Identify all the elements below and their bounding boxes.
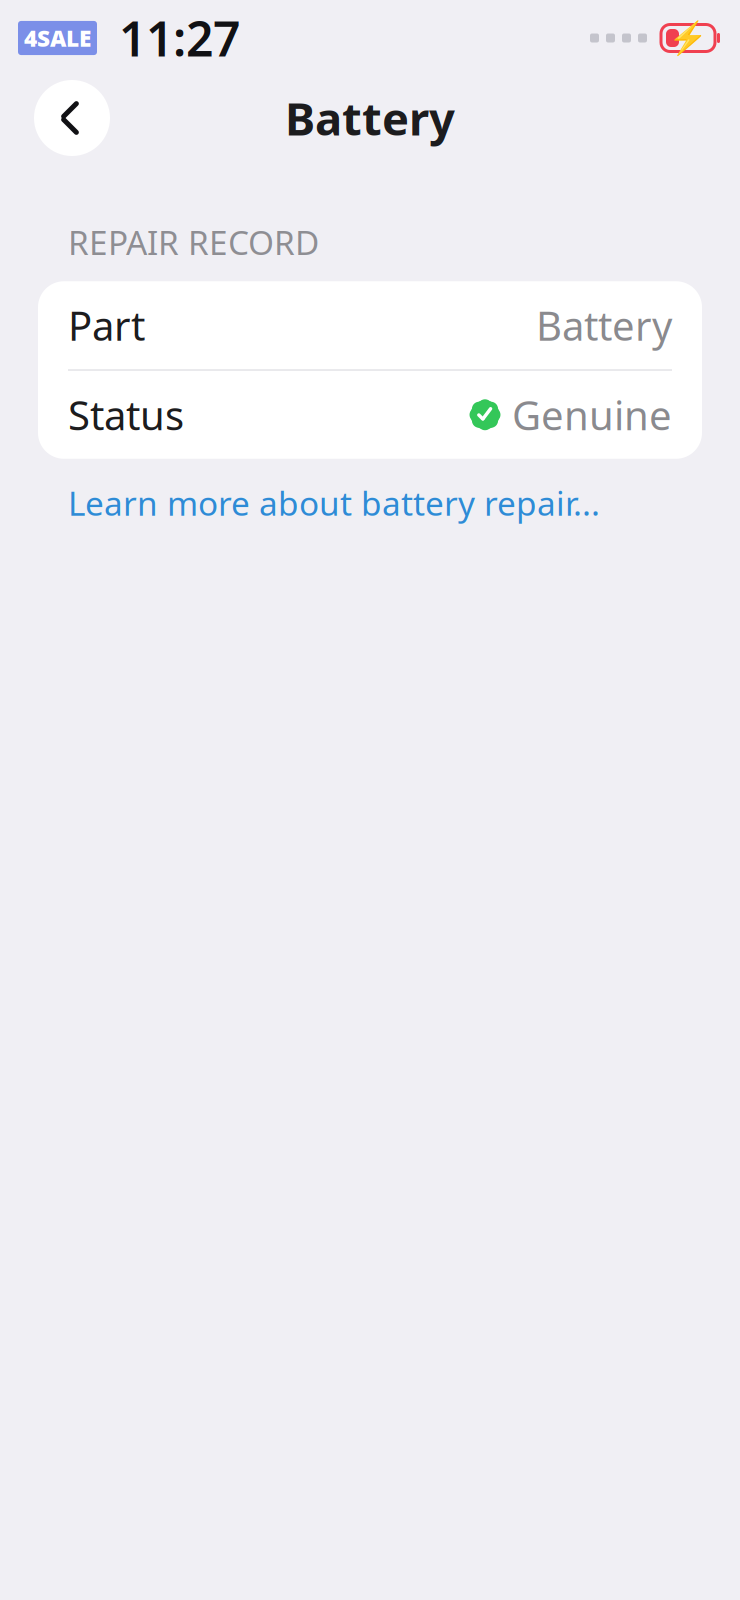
staticText: Part [68,299,145,352]
button[interactable]: Status [38,371,702,459]
staticText: Battery [285,88,455,148]
staticText: REPAIR RECORD [68,220,319,264]
staticText: 4SALE [24,23,91,53]
staticText: Status [68,388,184,441]
staticText: Genuine [512,388,672,441]
button[interactable]: Back [34,80,110,156]
staticText: ⚡ [668,20,708,56]
staticText: Learn more about battery repair... [68,481,600,525]
button[interactable]: Learn more about battery repair... [68,481,600,525]
staticText: Battery [536,299,672,352]
staticText: 11:27 [119,6,240,70]
button[interactable]: Part [38,281,702,369]
